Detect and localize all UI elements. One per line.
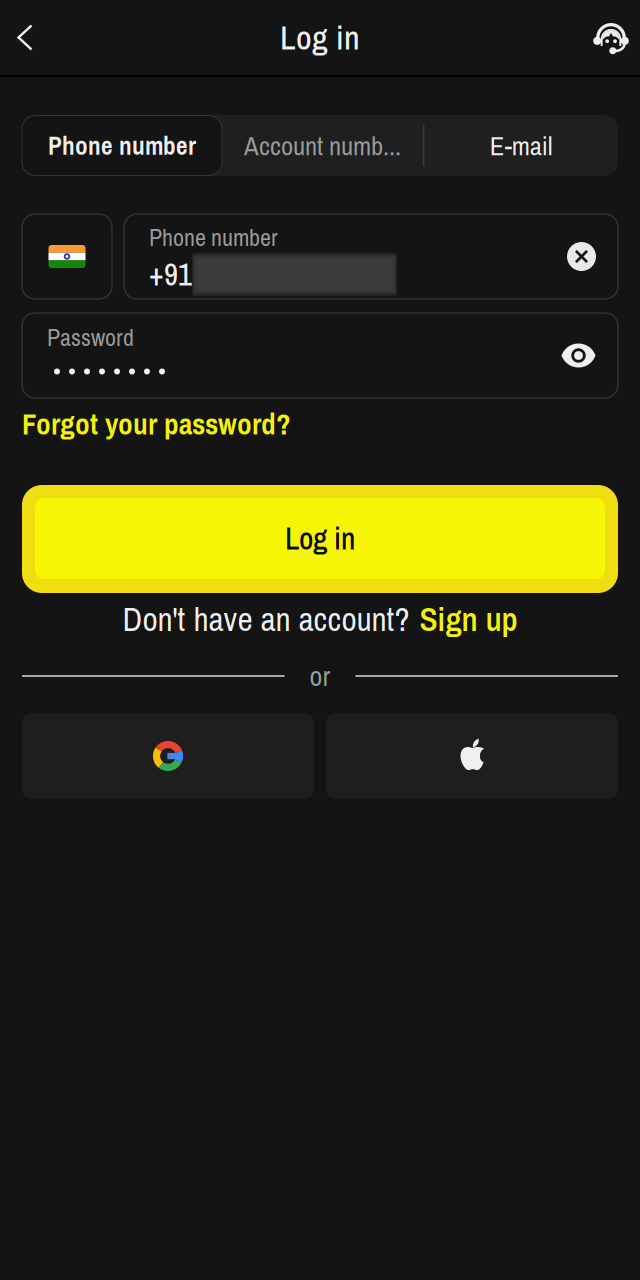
staticText: Phone number [48, 129, 196, 162]
staticText: +91 [149, 254, 192, 295]
button[interactable]: Continue with Google [22, 713, 314, 799]
staticText: Forgot your password? [22, 405, 291, 443]
button[interactable]: Customer support [589, 6, 633, 68]
staticText: E-mail [490, 128, 553, 163]
staticText: Log in [285, 518, 355, 559]
button[interactable]: Forgot your password? [22, 408, 618, 440]
staticText: Don't have an account? [122, 597, 409, 641]
button[interactable]: Phone number [22, 115, 222, 175]
button[interactable]: Account numb... [222, 115, 423, 176]
staticText: Account numb... [244, 128, 401, 163]
button[interactable]: Continue with Apple [326, 713, 618, 799]
staticText: Password [47, 321, 134, 353]
button[interactable]: E-mail [424, 115, 618, 176]
button[interactable]: Show password [561, 343, 596, 368]
staticText: Sign up [419, 597, 517, 641]
button[interactable]: Back [3, 6, 47, 68]
button[interactable]: Log in [22, 485, 618, 593]
staticText: Phone number [149, 221, 278, 253]
button[interactable]: Select country code [22, 214, 112, 299]
button[interactable]: Don't have an account? [22, 597, 618, 641]
staticText: or [309, 658, 330, 694]
staticText: Log in [280, 16, 360, 59]
button[interactable]: Clear phone number [567, 242, 596, 271]
